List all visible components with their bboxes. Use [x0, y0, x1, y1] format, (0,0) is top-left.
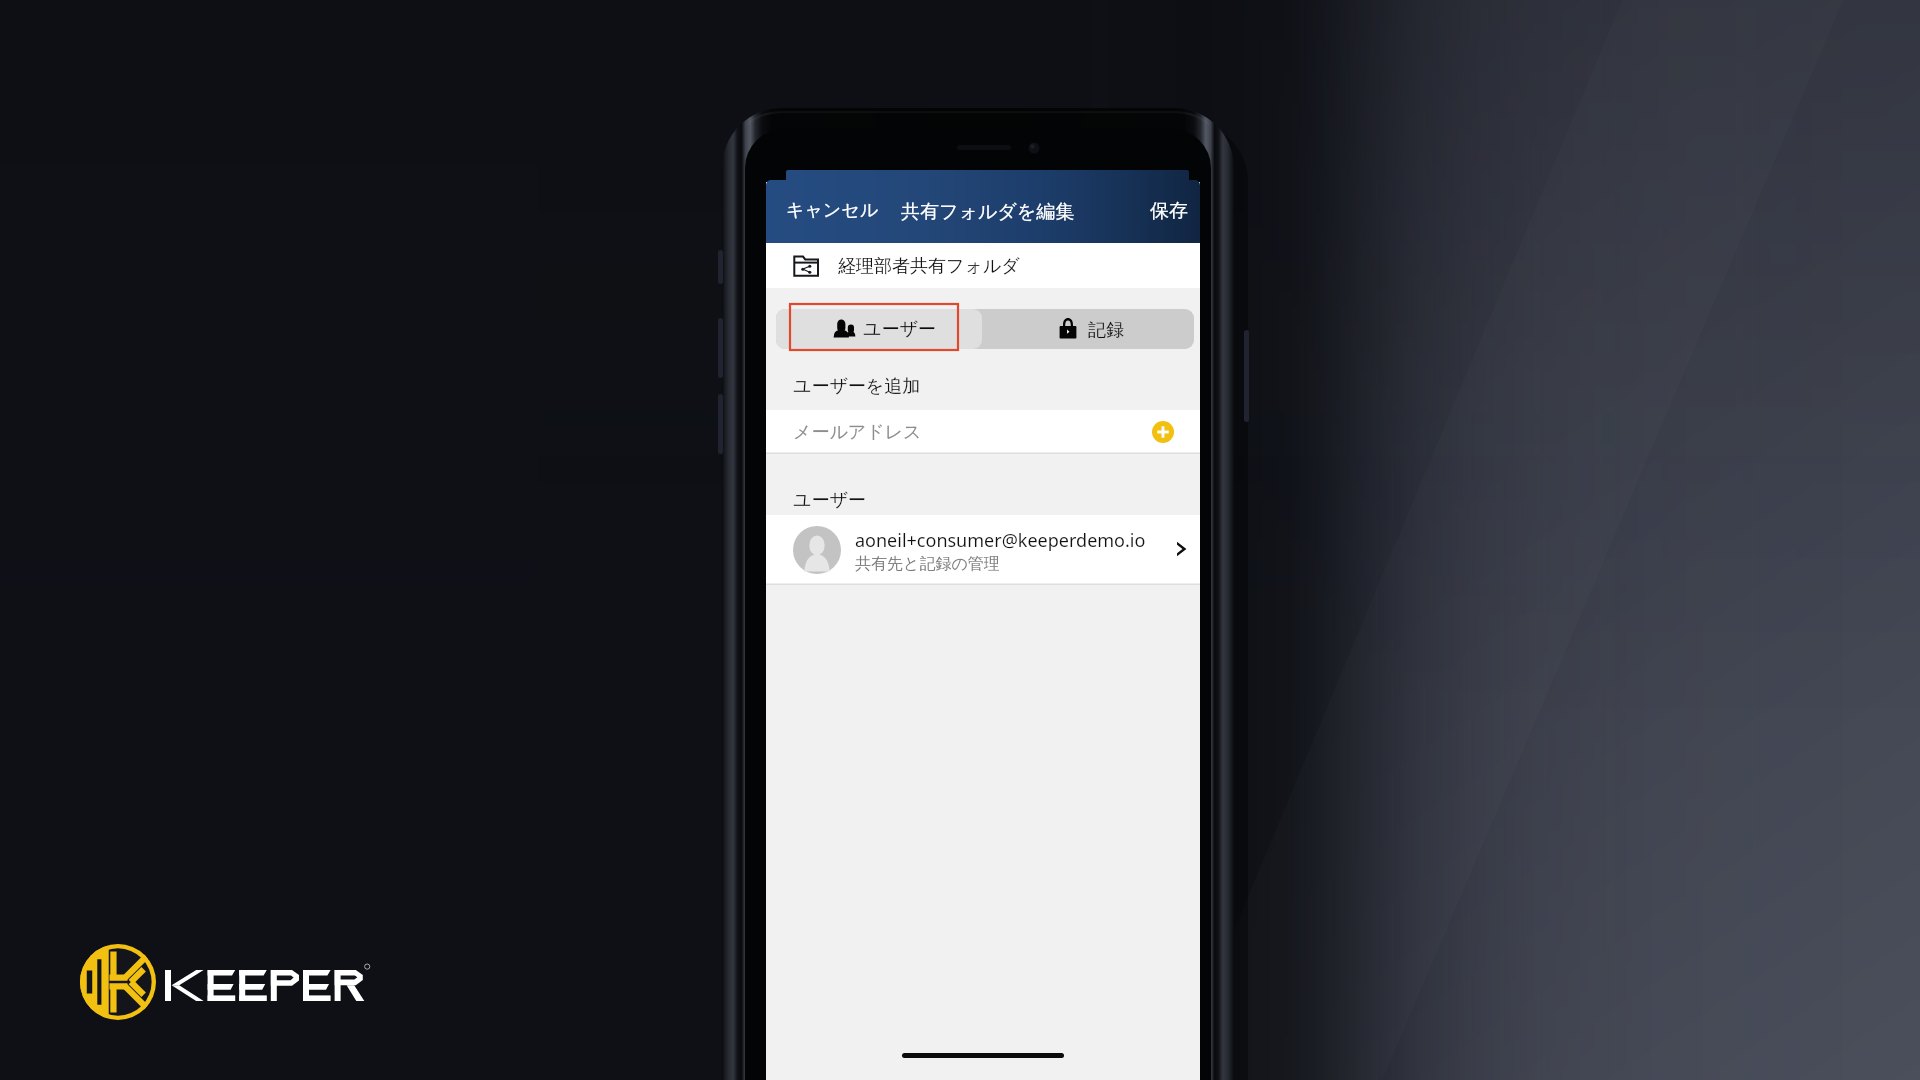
staticText: ユーザー — [793, 489, 866, 512]
button[interactable]: 保存 — [1142, 189, 1196, 233]
staticText: 共有フォルダを編集 — [901, 200, 1075, 224]
button[interactable]: 記録 — [982, 309, 1194, 349]
staticText: 経理部者共有フォルダ — [838, 255, 1020, 278]
staticText: キャンセル — [786, 199, 879, 222]
button[interactable]: 経理部者共有フォルダ — [766, 243, 1200, 288]
staticText: 共有先と記録の管理 — [855, 554, 1000, 574]
staticText: ユーザー — [863, 318, 936, 341]
button[interactable]: キャンセル — [778, 189, 887, 232]
button[interactable]: ユーザー — [776, 309, 982, 349]
button[interactable]: aoneil+consumer@keeperdemo.io — [766, 515, 1200, 585]
staticText: 保存 — [1150, 199, 1188, 223]
button[interactable]: メールアドレス — [766, 410, 1200, 454]
button[interactable]: Add user — [1152, 421, 1174, 443]
staticText: aoneil+consumer@keeperdemo.io — [855, 528, 1146, 553]
staticText: ユーザーを追加 — [793, 375, 921, 398]
staticText: 記録 — [1088, 319, 1124, 342]
staticText: メールアドレス — [793, 421, 922, 444]
